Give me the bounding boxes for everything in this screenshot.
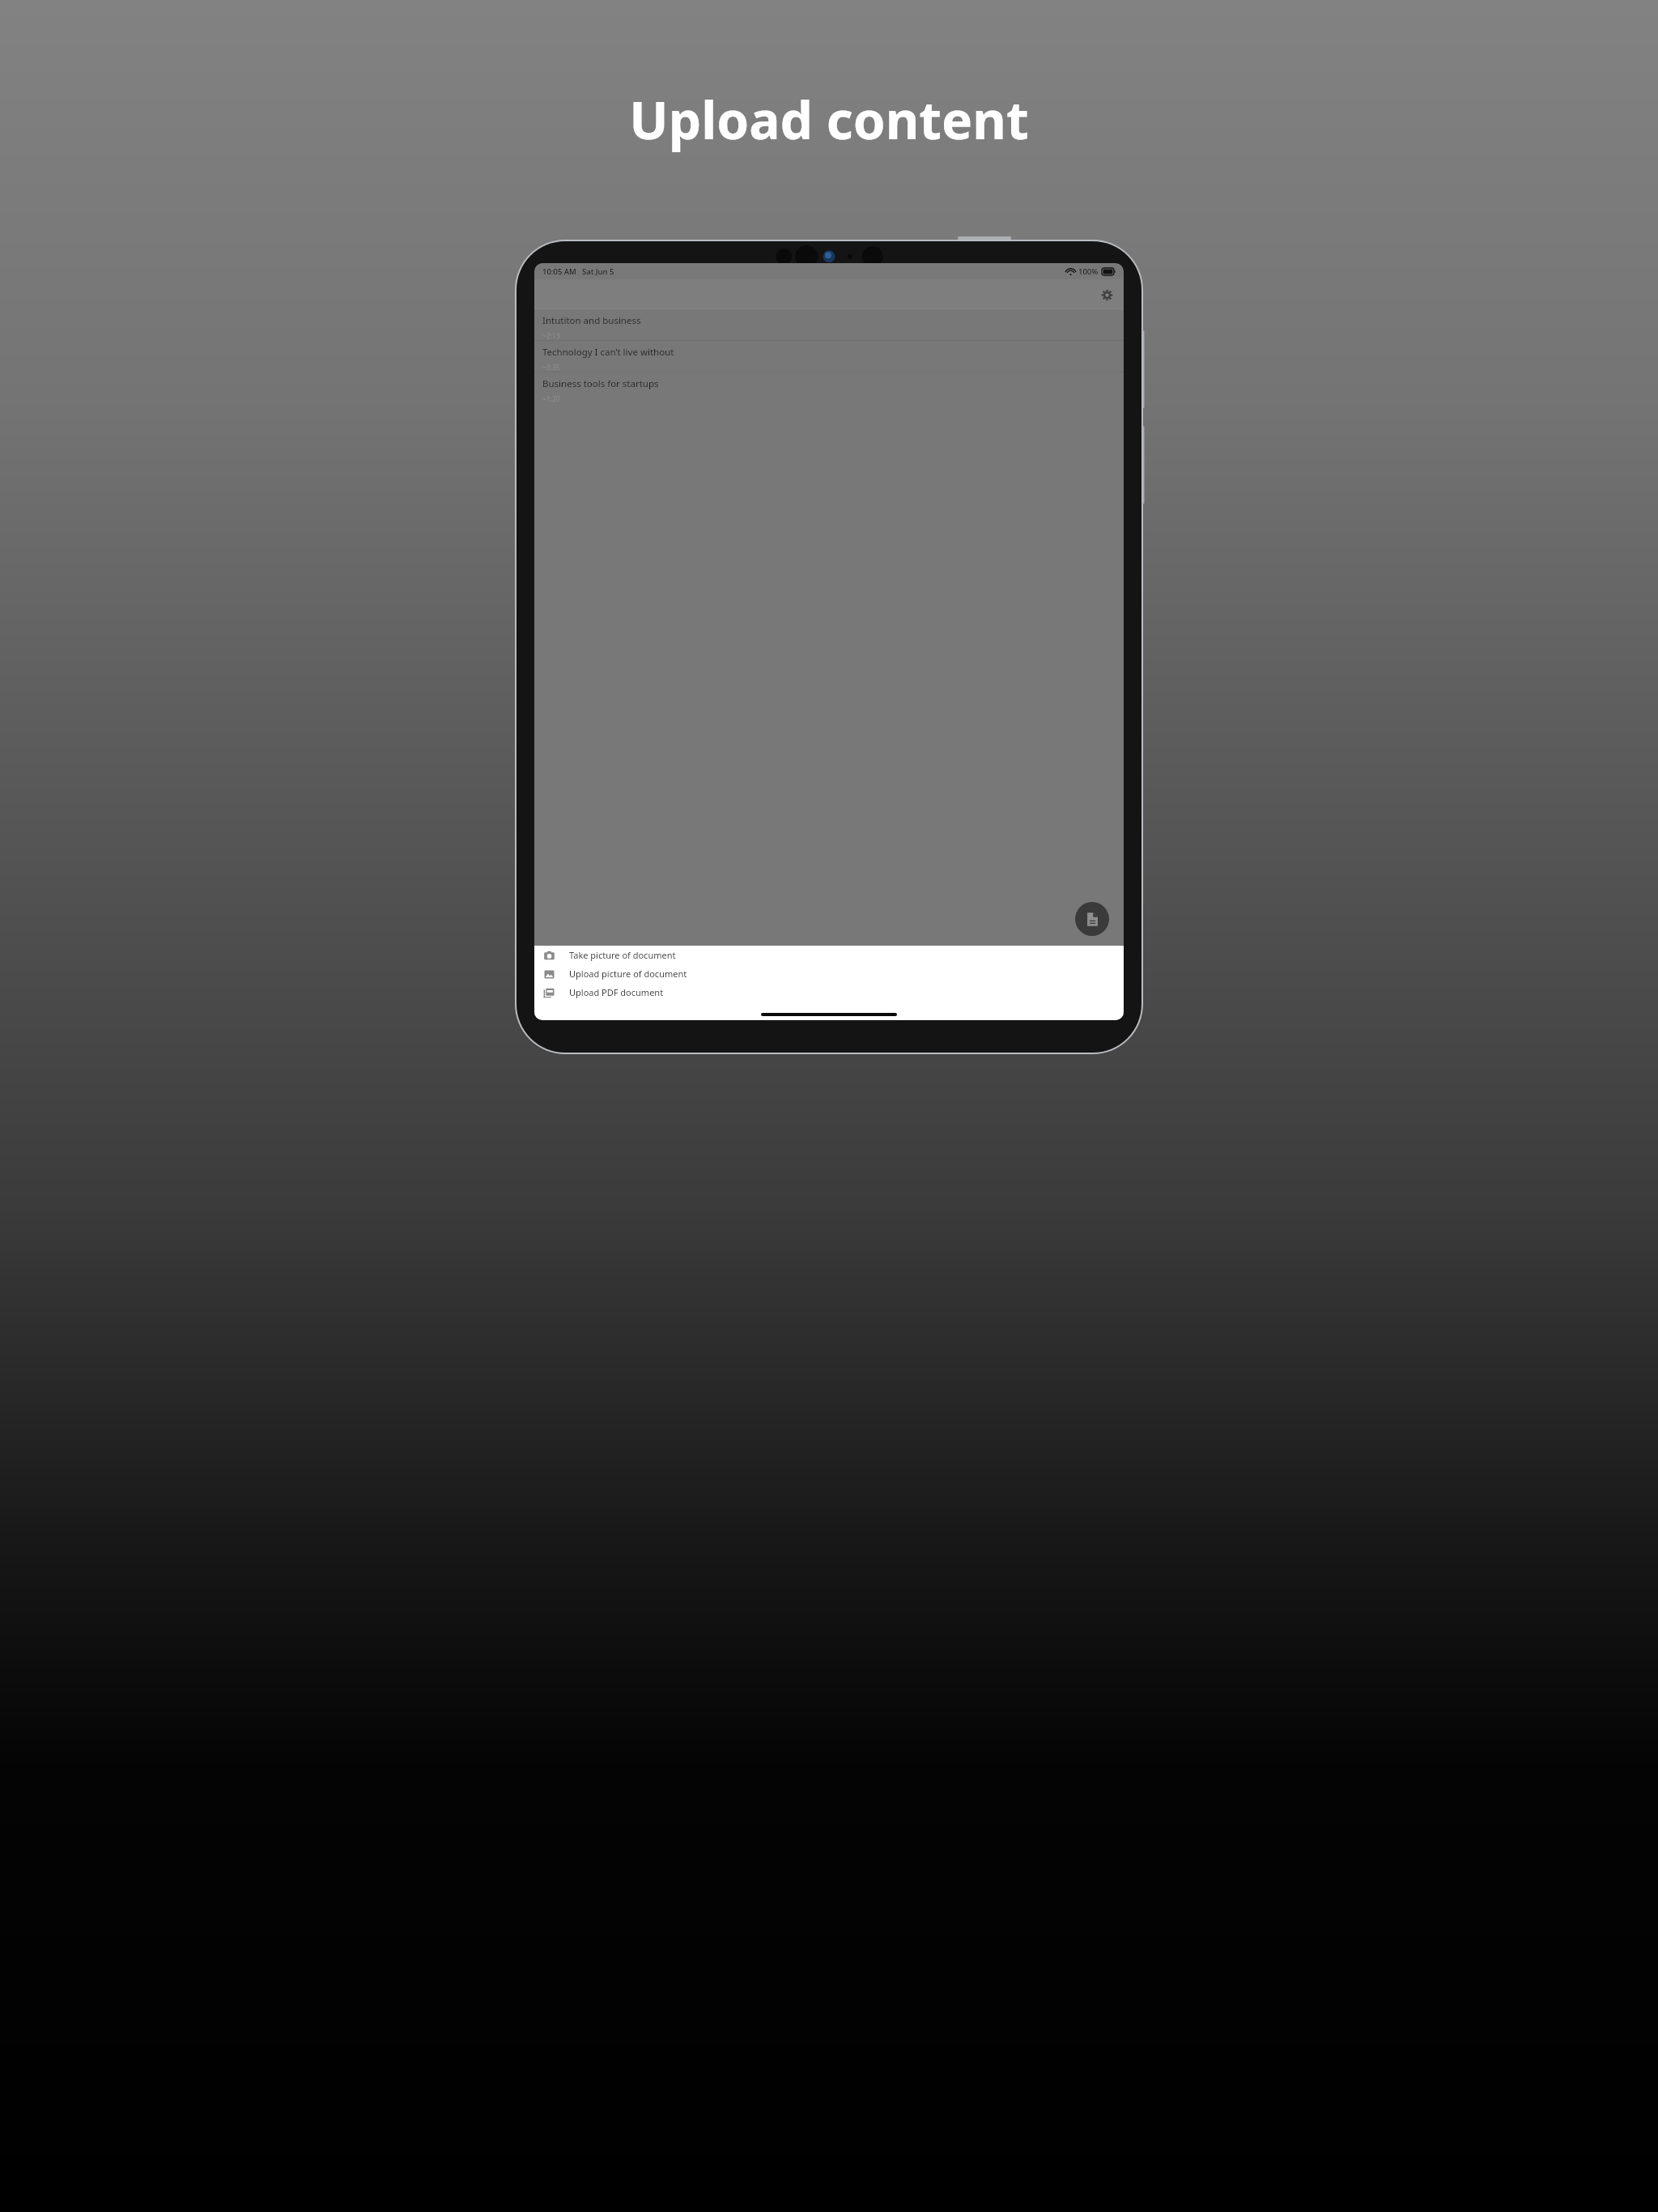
button[interactable]: Business tools for startups [534, 372, 1124, 403]
button[interactable]: Technology I can’t live without [534, 341, 1124, 372]
staticText: 100% [1078, 266, 1099, 277]
staticText: Technology I can’t live without [542, 346, 674, 359]
button[interactable]: Upload PDF document [534, 983, 1124, 1002]
staticText: Upload PDF document [569, 986, 664, 998]
staticText: ~1:20 [542, 394, 560, 403]
button[interactable]: Intutiton and business [534, 309, 1124, 340]
button[interactable]: Upload document [1075, 902, 1109, 936]
staticText: Upload picture of document [569, 968, 687, 980]
button[interactable]: Take picture of document [534, 946, 1124, 964]
staticText: ~2:13 [542, 331, 560, 340]
staticText: Business tools for startups [542, 377, 659, 390]
button[interactable]: Settings [1096, 284, 1117, 305]
button[interactable]: Upload picture of document [534, 964, 1124, 983]
staticText: Upload content [629, 84, 1029, 155]
staticText: ~3:35 [542, 363, 560, 372]
staticText: Sat Jun 5 [582, 266, 614, 277]
staticText: Intutiton and business [542, 314, 641, 327]
staticText: 10:05 AM [542, 266, 576, 277]
staticText: Take picture of document [569, 949, 676, 961]
